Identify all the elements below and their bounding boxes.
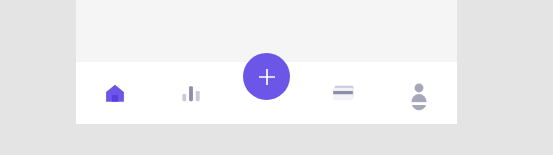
button[interactable]: Profile xyxy=(381,62,457,124)
button[interactable]: Statistics xyxy=(153,62,229,124)
button[interactable]: Cards xyxy=(305,62,381,124)
button[interactable]: Add xyxy=(243,53,290,100)
button[interactable]: Home xyxy=(76,62,153,124)
